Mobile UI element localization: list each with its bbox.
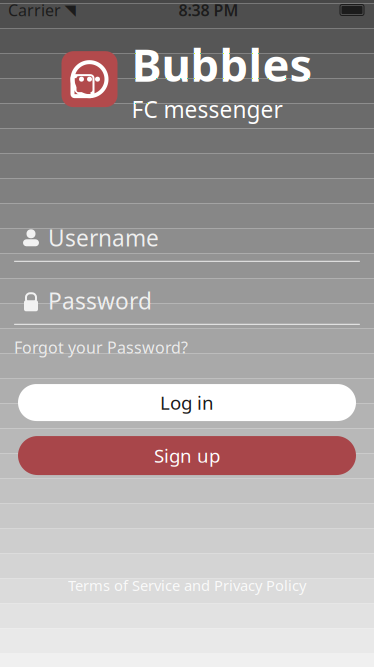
button[interactable]: Sign up [18, 436, 356, 475]
staticText: and [184, 575, 210, 595]
staticText: Password [48, 286, 152, 316]
staticText: Sign up [154, 443, 220, 468]
button[interactable]: Log in [18, 384, 356, 421]
button[interactable]: Terms of Service [68, 575, 180, 595]
button[interactable]: Forgot your Password? [14, 325, 188, 362]
staticText: Log in [160, 390, 214, 415]
button[interactable]: Privacy Policy [214, 575, 306, 595]
staticText: ◥ [64, 2, 75, 18]
staticText: Bubbles [131, 34, 312, 94]
staticText: FC messenger [131, 94, 282, 124]
staticText: Forgot your Password? [14, 337, 188, 358]
staticText: Username [48, 223, 159, 253]
staticText: Privacy Policy [214, 575, 306, 595]
staticText: 8:38 PM [178, 0, 238, 21]
staticText: Terms of Service [68, 575, 180, 595]
staticText: Carrier [8, 0, 61, 21]
